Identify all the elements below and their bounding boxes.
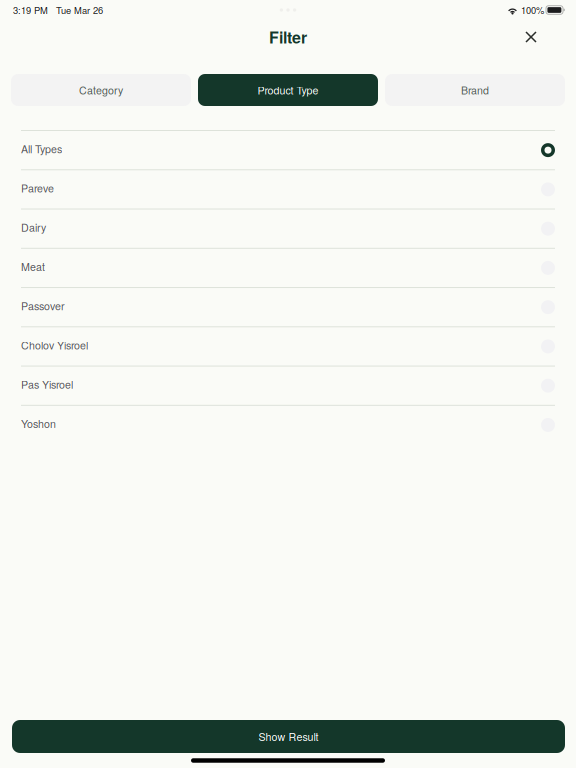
staticText: All Types	[21, 141, 62, 156]
staticText: Product Type	[257, 82, 318, 98]
button[interactable]: Product Type	[198, 74, 378, 106]
button[interactable]: Yoshon	[0, 406, 576, 444]
staticText: Filter	[269, 25, 307, 48]
button[interactable]: Close	[516, 22, 546, 52]
staticText: Cholov Yisroel	[21, 337, 88, 353]
staticText: 100%	[521, 3, 544, 17]
staticText: Yoshon	[21, 416, 56, 431]
staticText: Pareve	[21, 180, 54, 196]
staticText: 3:19 PM	[13, 3, 48, 17]
button[interactable]: Dairy	[0, 209, 576, 248]
button[interactable]: Pas Yisroel	[0, 367, 576, 405]
staticText: Dairy	[21, 219, 46, 235]
button[interactable]: Brand	[385, 74, 565, 106]
staticText: Passover	[21, 298, 65, 313]
button[interactable]: All Types	[0, 131, 576, 169]
staticText: Show Result	[258, 729, 318, 744]
button[interactable]: Passover	[0, 288, 576, 326]
button[interactable]: Show Result	[12, 720, 565, 753]
staticText: Pas Yisroel	[21, 377, 73, 392]
button[interactable]: Cholov Yisroel	[0, 327, 576, 366]
button[interactable]: Meat	[0, 249, 576, 287]
button[interactable]: Pareve	[0, 170, 576, 209]
staticText: Tue Mar 26	[56, 3, 103, 17]
staticText: Category	[79, 82, 123, 98]
staticText: Brand	[461, 82, 489, 98]
staticText: Meat	[21, 259, 45, 274]
button[interactable]: Category	[11, 74, 191, 106]
